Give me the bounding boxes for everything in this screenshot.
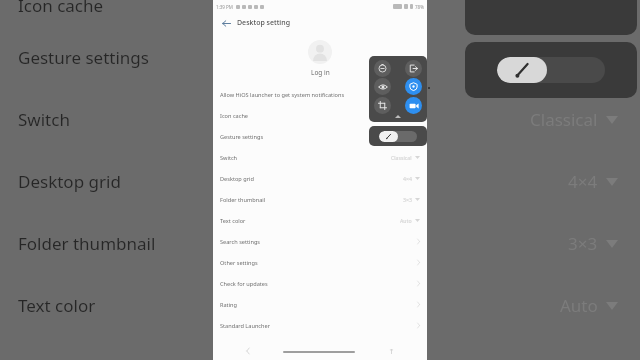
staticText: Switch xyxy=(220,154,238,162)
button[interactable]: Back xyxy=(219,16,233,30)
button[interactable]: Switch xyxy=(213,147,427,168)
button[interactable]: Gesture settings xyxy=(213,126,427,147)
button[interactable]: Rating xyxy=(213,294,427,315)
button[interactable]: Brush xyxy=(405,78,422,95)
staticText: Search settings xyxy=(220,238,261,246)
button[interactable]: Check for updates xyxy=(213,273,427,294)
staticText: Icon cache xyxy=(18,0,104,17)
staticText: 4×4 xyxy=(568,170,598,193)
staticText: Auto xyxy=(400,217,412,224)
button[interactable]: Back xyxy=(213,13,427,32)
staticText: 78% xyxy=(415,4,424,10)
button[interactable]: Profile photo xyxy=(308,40,332,64)
staticText: Text color xyxy=(220,217,246,225)
button[interactable]: Icon cache xyxy=(213,105,427,126)
button[interactable]: Desktop grid xyxy=(213,168,427,189)
staticText: Desktop grid xyxy=(18,170,121,193)
staticText: Auto xyxy=(560,294,598,317)
button[interactable]: Other settings xyxy=(213,252,427,273)
staticText: Classical xyxy=(530,108,598,131)
button[interactable]: Brush toggle xyxy=(379,131,417,142)
staticText: Text color xyxy=(18,294,96,317)
staticText: Icon cache xyxy=(220,112,248,120)
staticText: 4×4 xyxy=(403,175,412,182)
staticText: Check for updates xyxy=(220,280,268,288)
staticText: Other settings xyxy=(220,259,258,267)
staticText: Desktop grid xyxy=(220,175,254,183)
staticText: 3×3 xyxy=(403,196,412,203)
button[interactable]: Exit xyxy=(405,60,422,77)
staticText: Switch xyxy=(18,108,70,131)
button[interactable]: Folder thumbnail xyxy=(213,189,427,210)
button[interactable]: Recents xyxy=(386,346,396,356)
button[interactable]: Log in xyxy=(311,68,330,77)
staticText: Standard Launcher xyxy=(220,322,270,330)
button[interactable]: Crop xyxy=(374,97,391,114)
staticText: Desktop setting xyxy=(237,18,290,28)
button[interactable]: Home xyxy=(283,347,355,356)
button[interactable]: Record xyxy=(405,97,422,114)
staticText: Folder thumbnail xyxy=(220,196,266,204)
staticText: 1:39 PM xyxy=(216,4,233,10)
staticText: Gesture settings xyxy=(18,46,149,69)
button[interactable]: Timer xyxy=(374,60,391,77)
staticText: 3×3 xyxy=(568,232,598,255)
staticText: Classical xyxy=(391,154,412,161)
staticText: Allow HiOS launcher to get system notifi… xyxy=(220,91,345,99)
staticText: Rating xyxy=(220,301,237,309)
staticText: Gesture settings xyxy=(220,133,264,141)
button[interactable]: Search settings xyxy=(213,231,427,252)
button[interactable]: Hide xyxy=(374,78,391,95)
staticText: Folder thumbnail xyxy=(18,232,156,255)
button[interactable]: Text color xyxy=(213,210,427,231)
button[interactable]: Allow HiOS launcher to get system notifi… xyxy=(213,84,427,105)
button[interactable]: Standard Launcher xyxy=(213,315,427,336)
button[interactable]: Back xyxy=(243,346,253,356)
